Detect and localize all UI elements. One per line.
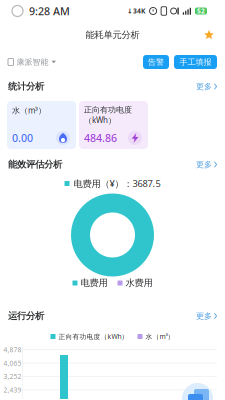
button[interactable]: 正向有功电度 （kWh） bbox=[79, 101, 148, 149]
staticText: 能耗单元分析 bbox=[85, 29, 139, 41]
staticText: 0.00 bbox=[12, 131, 33, 145]
button[interactable]: 更多 bbox=[190, 155, 217, 174]
button[interactable]: 手工填报 bbox=[174, 55, 217, 69]
button[interactable]: 水（m³） bbox=[7, 101, 76, 149]
staticText: 4,065 bbox=[3, 359, 21, 368]
staticText: 电费用（¥）：3687.5 bbox=[73, 177, 160, 190]
button[interactable]: 更多 bbox=[190, 306, 217, 326]
staticText: 2,439 bbox=[3, 385, 21, 394]
staticText: 电费用 bbox=[80, 277, 107, 289]
staticText: 更多 bbox=[196, 311, 212, 321]
button[interactable]: 更多 bbox=[190, 77, 217, 96]
staticText: 能效评估分析 bbox=[8, 159, 62, 170]
staticText: 52 bbox=[197, 7, 205, 15]
staticText: 运行分析 bbox=[8, 310, 44, 322]
staticText: 水（m³） bbox=[145, 332, 174, 341]
staticText: 484.86 bbox=[84, 131, 117, 145]
staticText: 告警 bbox=[148, 57, 164, 67]
button[interactable]: 切换视图 bbox=[182, 383, 213, 400]
staticText: 3,252 bbox=[3, 372, 21, 381]
button[interactable]: 康派智能 bbox=[8, 51, 62, 73]
staticText: 更多 bbox=[196, 82, 212, 91]
staticText: 统计分析 bbox=[8, 81, 44, 92]
staticText: 正向有功电度 （kWh） bbox=[84, 105, 132, 125]
button[interactable]: 收藏 bbox=[199, 24, 219, 46]
staticText: 正向有功电度（kWh） bbox=[58, 332, 128, 341]
staticText: 水费用 bbox=[125, 277, 152, 289]
staticText: 水（m³） bbox=[12, 105, 46, 116]
staticText: 4,878 bbox=[3, 345, 21, 354]
staticText: ↓34K bbox=[127, 7, 145, 15]
staticText: 手工填报 bbox=[179, 57, 211, 67]
staticText: 更多 bbox=[196, 160, 212, 169]
staticText: 康派智能 bbox=[16, 57, 48, 67]
button[interactable]: 告警 bbox=[143, 55, 169, 69]
staticText: 9:28 AM bbox=[29, 4, 70, 18]
